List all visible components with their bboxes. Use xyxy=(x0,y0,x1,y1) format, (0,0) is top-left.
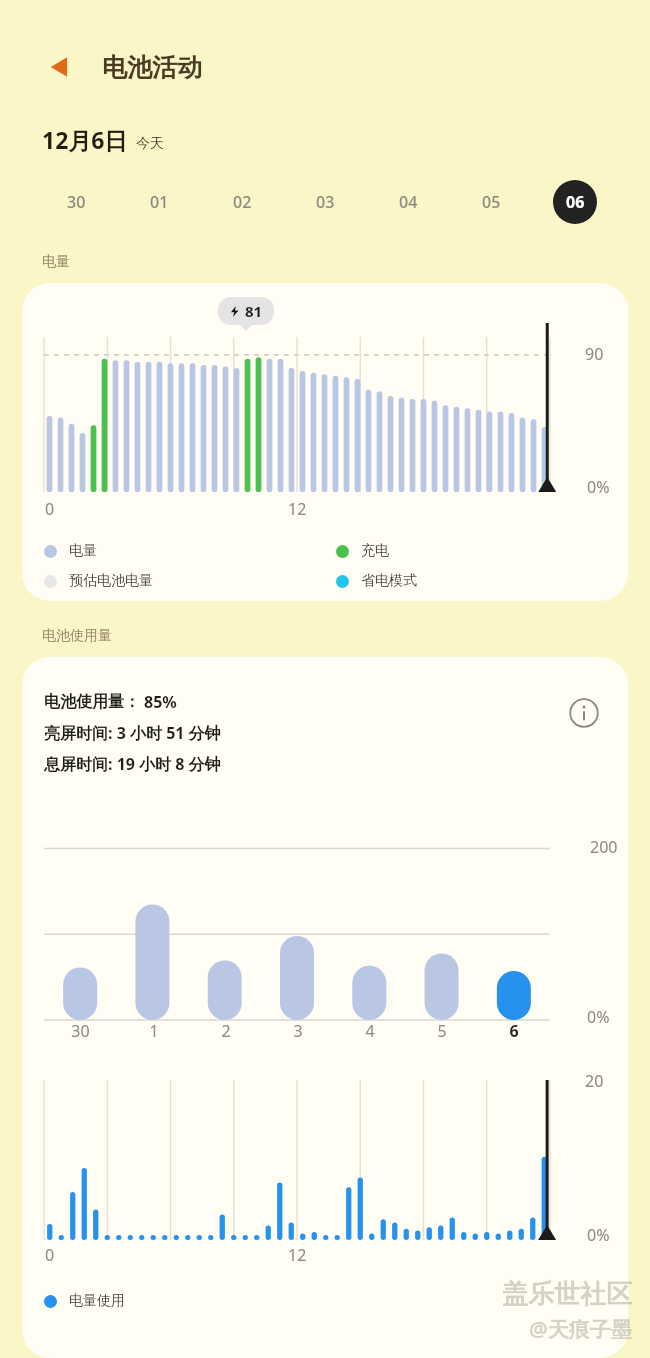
button[interactable]: 06 xyxy=(533,177,616,227)
staticText: 4 xyxy=(365,1020,375,1042)
staticText: 12月6日 xyxy=(42,124,128,155)
staticText: 12 xyxy=(288,1244,307,1266)
button[interactable]: 电池使用量： xyxy=(22,657,628,1358)
staticText: 0 xyxy=(45,1244,55,1266)
staticText: 息屏时间: 19 小时 8 分钟 xyxy=(44,753,221,775)
staticText: 预估电池电量 xyxy=(69,572,153,590)
button[interactable]: 电量使用 xyxy=(44,1292,125,1310)
staticText: 电池使用量 xyxy=(42,627,112,645)
staticText: 04 xyxy=(399,191,418,213)
staticText: 0% xyxy=(587,1006,610,1028)
staticText: 盖乐世社区 xyxy=(502,1278,632,1311)
staticText: 30 xyxy=(71,1020,90,1042)
button[interactable]: 01 xyxy=(118,177,201,227)
staticText: 充电 xyxy=(361,542,389,560)
staticText: 90 xyxy=(585,343,604,365)
staticText: 85% xyxy=(144,691,177,713)
staticText: 2 xyxy=(221,1020,231,1042)
staticText: 电量使用 xyxy=(69,1292,125,1310)
staticText: 03 xyxy=(316,191,335,213)
button[interactable]: 省电模式 xyxy=(336,572,628,590)
staticText: 电池使用量： xyxy=(44,692,140,712)
button[interactable]: 02 xyxy=(201,177,284,227)
staticText: 0% xyxy=(587,476,610,498)
staticText: 亮屏时间: 3 小时 51 分钟 xyxy=(44,722,221,744)
staticText: 30 xyxy=(67,191,86,213)
staticText: @天痕子墨 xyxy=(529,1315,632,1344)
button[interactable]: 电量 xyxy=(44,542,336,560)
staticText: 81 xyxy=(245,301,263,321)
staticText: 6 xyxy=(509,1020,519,1042)
staticText: 20 xyxy=(585,1070,604,1092)
staticText: 01 xyxy=(150,191,169,213)
staticText: 02 xyxy=(233,191,252,213)
button[interactable]: 04 xyxy=(367,177,450,227)
button[interactable]: 81 xyxy=(22,283,628,601)
staticText: 电量 xyxy=(42,253,70,271)
button[interactable]: 充电 xyxy=(336,542,628,560)
staticText: 5 xyxy=(437,1020,447,1042)
button[interactable]: Information xyxy=(562,691,606,735)
staticText: 06 xyxy=(566,191,585,213)
button[interactable]: 预估电池电量 xyxy=(44,572,336,590)
staticText: 12 xyxy=(288,498,307,520)
button[interactable]: Back xyxy=(38,45,82,89)
staticText: 电池活动 xyxy=(102,52,202,83)
button[interactable]: 30 xyxy=(34,177,118,227)
staticText: 05 xyxy=(482,191,501,213)
staticText: 电量 xyxy=(69,542,97,560)
staticText: 今天 xyxy=(136,135,164,153)
button[interactable]: 05 xyxy=(450,177,533,227)
staticText: 3 xyxy=(293,1020,303,1042)
staticText: 0 xyxy=(45,498,55,520)
staticText: 0% xyxy=(587,1224,610,1246)
staticText: 1 xyxy=(149,1020,159,1042)
staticText: 200 xyxy=(590,836,618,858)
button[interactable]: 03 xyxy=(284,177,367,227)
staticText: 省电模式 xyxy=(361,572,417,590)
